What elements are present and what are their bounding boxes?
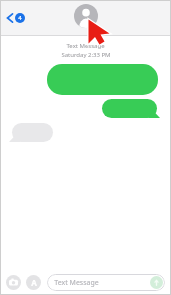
button[interactable]: Camera (6, 275, 21, 290)
button[interactable]: Contact avatar (74, 4, 98, 28)
button[interactable] (9, 123, 53, 142)
button[interactable] (47, 64, 158, 95)
staticText: A (31, 277, 37, 288)
button[interactable]: Text Message (47, 274, 165, 291)
staticText: Saturday 2:33 PM (61, 51, 111, 59)
button[interactable]: Send (150, 276, 163, 289)
button[interactable]: Apps (26, 275, 41, 290)
staticText: Text Message (66, 42, 105, 50)
staticText: Text Message (54, 278, 99, 288)
staticText: 4 (18, 14, 22, 22)
button[interactable]: Back (5, 8, 27, 28)
button[interactable] (102, 99, 160, 118)
